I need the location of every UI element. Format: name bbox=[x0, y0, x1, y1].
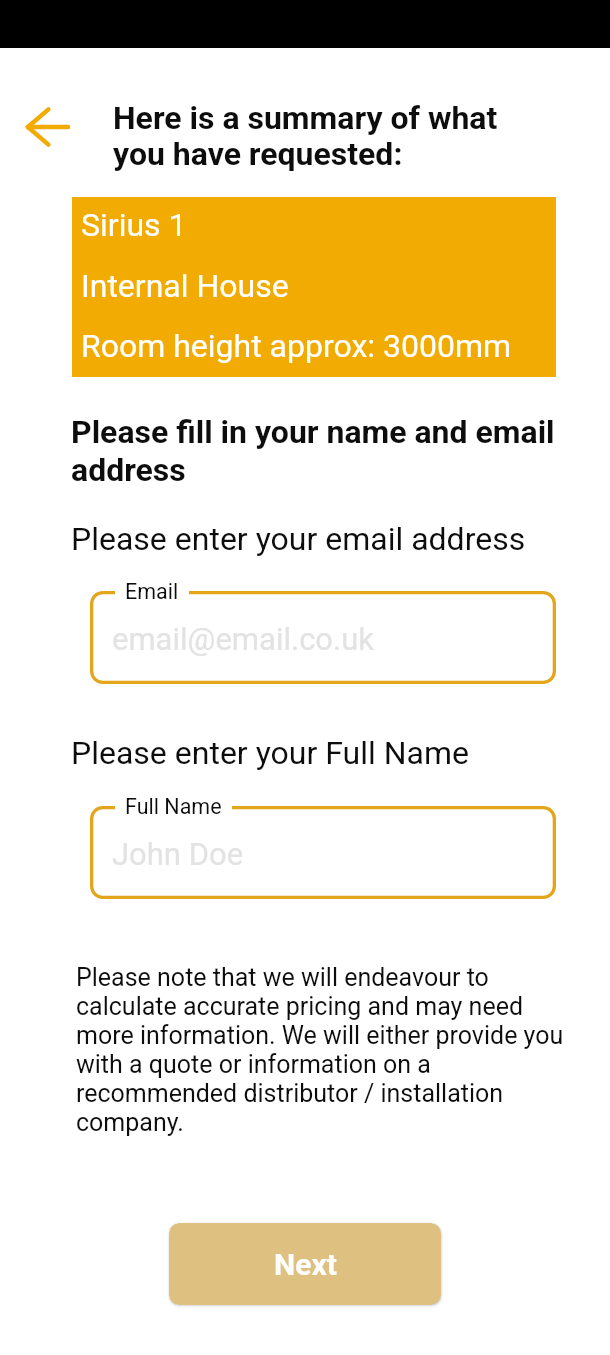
button[interactable]: Back bbox=[3, 84, 88, 169]
staticText: Sirius 1 bbox=[81, 206, 187, 244]
staticText: Room height approx: 3000mm bbox=[81, 327, 512, 365]
button[interactable]: John Doe bbox=[90, 806, 556, 899]
staticText: email@email.co.uk bbox=[112, 621, 375, 658]
button[interactable]: Next bbox=[169, 1223, 441, 1305]
staticText: Please fill in your name and email addre… bbox=[71, 413, 567, 489]
staticText: Full Name bbox=[125, 794, 222, 819]
staticText: Please enter your email address bbox=[71, 520, 526, 558]
button[interactable]: email@email.co.uk bbox=[90, 591, 556, 684]
staticText: Next bbox=[274, 1247, 337, 1282]
staticText: Please enter your Full Name bbox=[71, 734, 469, 772]
staticText: Internal House bbox=[81, 267, 289, 305]
staticText: Please note that we will endeavour to ca… bbox=[76, 963, 570, 1137]
staticText: John Doe bbox=[112, 836, 244, 873]
staticText: Here is a summary of what you have reque… bbox=[113, 100, 511, 172]
staticText: Email bbox=[125, 579, 179, 604]
